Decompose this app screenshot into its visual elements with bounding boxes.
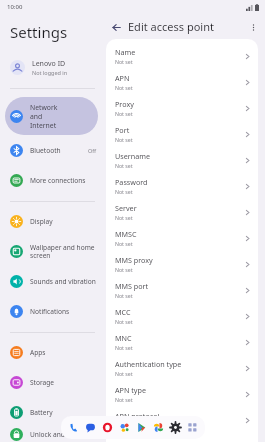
button[interactable]: Bluetooth [0, 135, 103, 165]
button[interactable]: Network [5, 97, 98, 135]
staticText: Not set [115, 162, 133, 169]
staticText: 10:00 [7, 3, 23, 11]
button[interactable]: Apps [184, 419, 201, 436]
staticText: Not logged in [32, 69, 68, 76]
staticText: APN [115, 73, 130, 83]
staticText: Not set [115, 110, 133, 117]
staticText: Name [115, 47, 136, 57]
staticText: Authentication type [115, 359, 182, 369]
button[interactable]: Apps [0, 337, 103, 367]
staticText: APN type [115, 385, 147, 395]
staticText: Not set [115, 188, 133, 195]
staticText: Not set [115, 422, 133, 429]
button[interactable]: Sounds and vibration [0, 266, 103, 296]
staticText: Not set [115, 266, 133, 273]
button[interactable]: Password [115, 173, 251, 199]
staticText: Proxy [115, 99, 134, 109]
button[interactable]: Notifications [0, 296, 103, 326]
staticText: Lenovo ID [32, 59, 66, 69]
button[interactable]: Authentication type [115, 355, 251, 381]
staticText: Battery [30, 408, 97, 417]
staticText: Password [115, 177, 148, 187]
staticText: Not set [115, 58, 133, 65]
staticText: More connections [30, 176, 97, 185]
button[interactable]: APN type [115, 381, 251, 407]
button[interactable]: Opera [99, 419, 116, 436]
button[interactable]: Phone [65, 419, 82, 436]
button[interactable]: Messages [82, 419, 99, 436]
staticText: Not set [115, 84, 133, 91]
staticText: Settings [10, 22, 68, 42]
staticText: Server [115, 203, 137, 213]
staticText: Not set [115, 396, 133, 403]
button[interactable]: APN protocol [115, 407, 251, 433]
staticText: MMS port [115, 281, 149, 291]
button[interactable]: Display [0, 206, 103, 236]
staticText: Display [30, 217, 97, 226]
staticText: Not set [115, 214, 133, 221]
staticText: Sounds and vibration [30, 277, 97, 286]
staticText: and [30, 112, 43, 121]
button[interactable]: Proxy [115, 95, 251, 121]
button[interactable]: More connections [0, 165, 103, 195]
staticText: Not set [115, 292, 133, 299]
button[interactable]: More options [245, 19, 261, 35]
staticText: MNC [115, 333, 132, 343]
button[interactable]: Play Store [133, 419, 150, 436]
button[interactable]: MCC [115, 303, 251, 329]
button[interactable]: Port [115, 121, 251, 147]
button[interactable]: Name [115, 43, 251, 69]
staticText: Notifications [30, 307, 97, 316]
staticText: MMSC [115, 229, 137, 239]
staticText: Not set [115, 370, 133, 377]
staticText: Port [115, 125, 130, 135]
staticText: Not set [115, 240, 133, 247]
button[interactable]: MMSC [115, 225, 251, 251]
staticText: MCC [115, 307, 131, 317]
staticText: Internet [30, 121, 57, 130]
staticText: Network [30, 103, 58, 112]
staticText: Username [115, 151, 150, 161]
button[interactable]: APN [115, 69, 251, 95]
button[interactable]: Wallpaper and home screen [0, 236, 103, 266]
staticText: APN protocol [115, 411, 160, 421]
staticText: MMS proxy [115, 255, 153, 265]
button[interactable]: Maps [116, 419, 133, 436]
staticText: Off [88, 147, 97, 154]
staticText: Wallpaper and home screen [30, 243, 97, 260]
button[interactable]: Back [107, 18, 125, 36]
staticText: Not set [115, 344, 133, 351]
button[interactable]: MMS port [115, 277, 251, 303]
button[interactable]: Photos [150, 419, 167, 436]
staticText: Not set [115, 318, 133, 325]
staticText: Unlock and security [30, 430, 97, 439]
button[interactable]: Lenovo ID [0, 52, 103, 82]
button[interactable]: Unlock and security [0, 427, 103, 442]
button[interactable]: Username [115, 147, 251, 173]
button[interactable]: Settings [167, 419, 184, 436]
button[interactable]: Storage [0, 367, 103, 397]
staticText: Storage [30, 378, 97, 387]
button[interactable]: Server [115, 199, 251, 225]
button[interactable]: MNC [115, 329, 251, 355]
staticText: Edit access point [128, 19, 214, 34]
button[interactable]: Battery [0, 397, 103, 427]
staticText: Not set [115, 136, 133, 143]
staticText: Bluetooth [30, 146, 88, 155]
staticText: Apps [30, 348, 97, 357]
button[interactable]: MMS proxy [115, 251, 251, 277]
